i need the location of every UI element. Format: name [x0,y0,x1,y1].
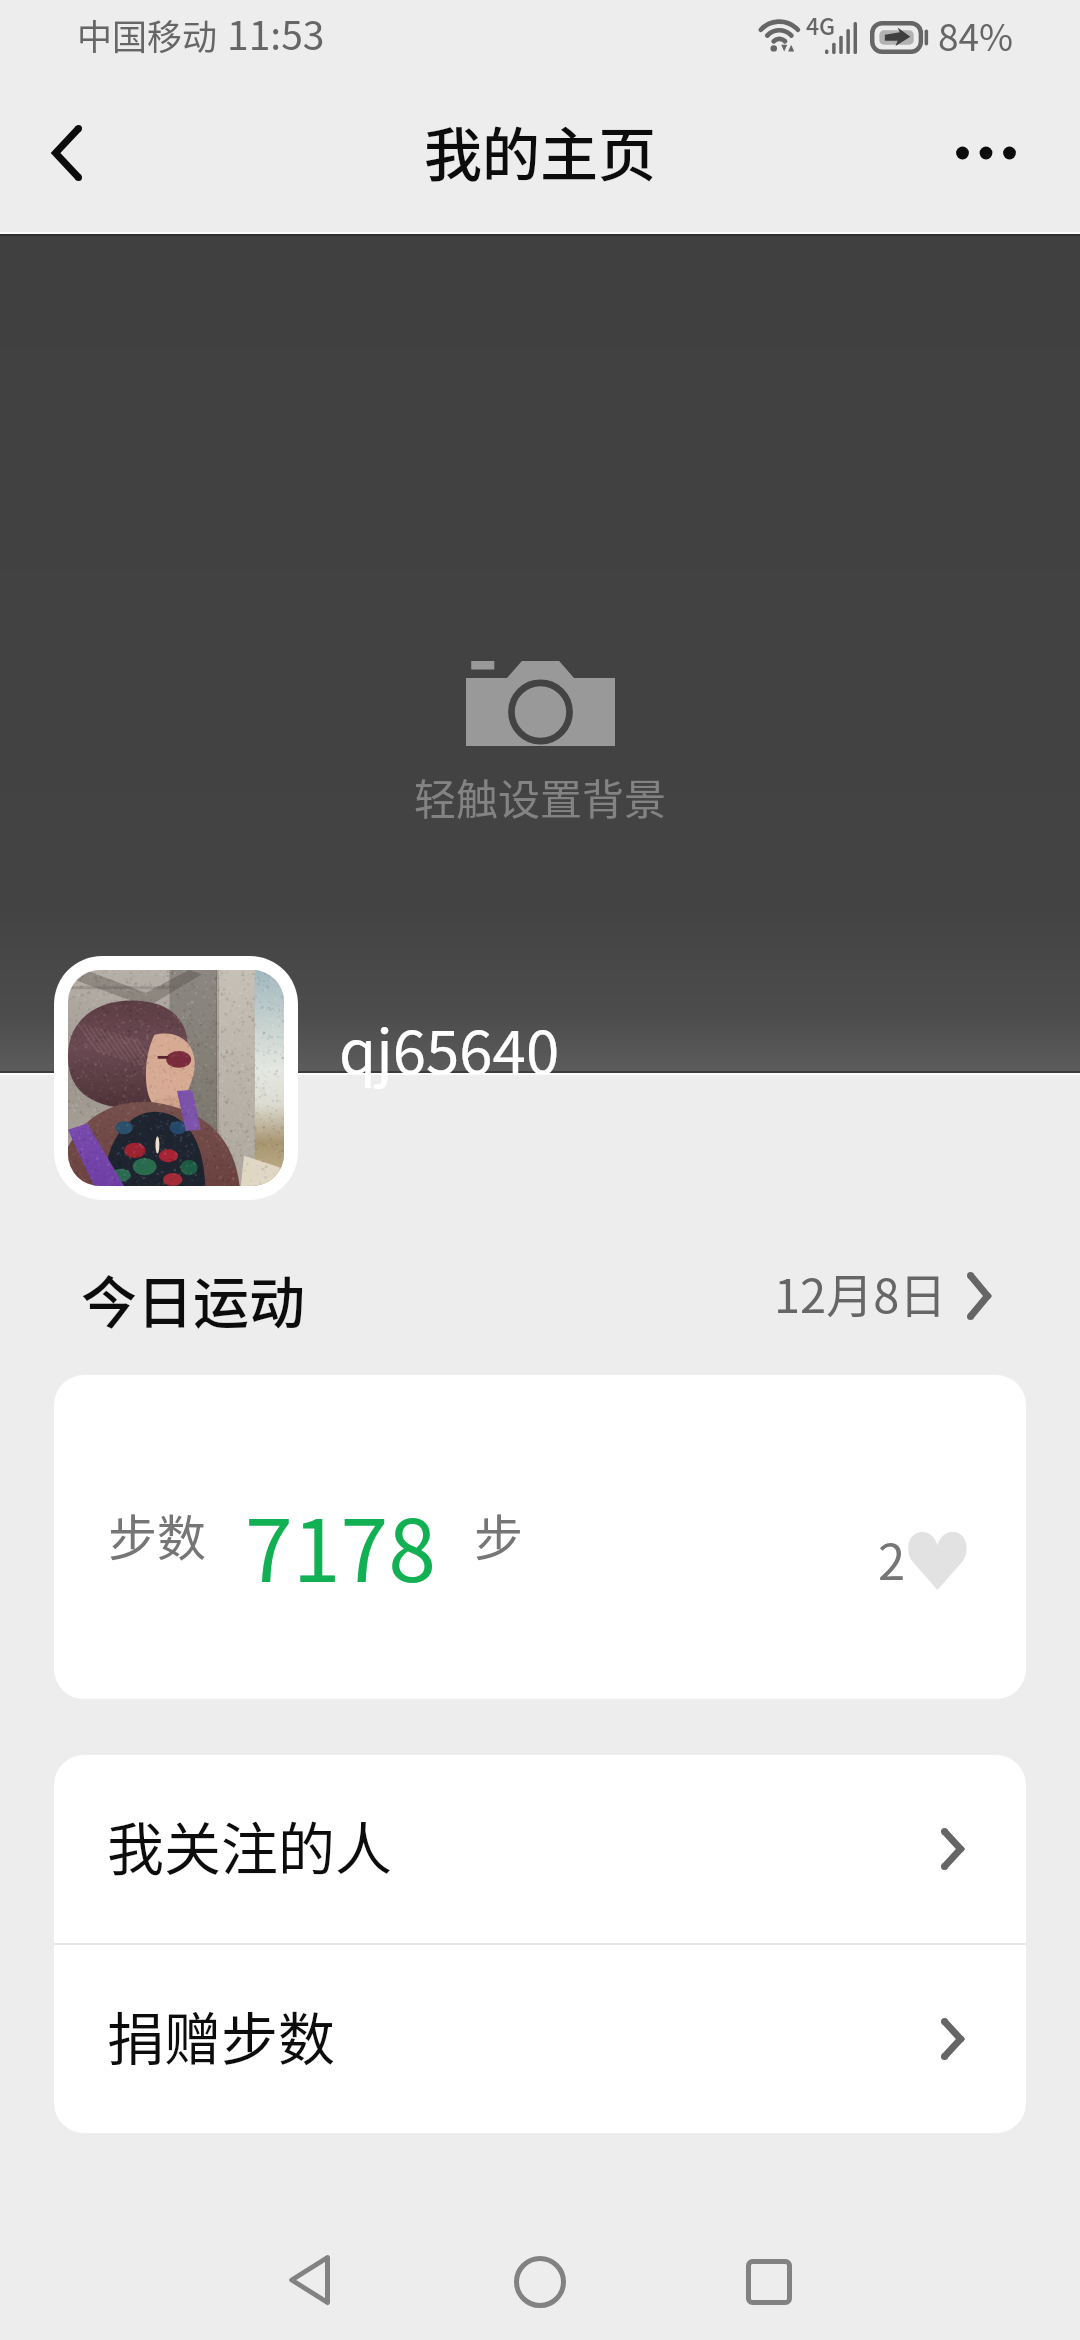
button[interactable]: Back [219,2150,399,2340]
staticText: 我关注的人 [107,1804,392,1887]
staticText: 步数 [108,1499,207,1570]
button[interactable]: 捐赠步数 [54,1945,1026,2133]
button[interactable]: 步数 [54,1375,1026,1699]
button[interactable]: Recent apps [679,2150,859,2340]
staticText: 2 [878,1523,906,1594]
button[interactable]: 12月8日 [760,1258,1028,1326]
button[interactable]: Back [0,72,131,234]
button[interactable]: 我关注的人 [54,1755,1026,1943]
button[interactable]: Profile photo [54,956,298,1200]
button[interactable]: More options [938,72,1080,234]
staticText: 4G [806,8,836,41]
staticText: 步 [474,1499,524,1570]
staticText: qj65640 [339,1004,560,1091]
staticText: 中国移动 [77,9,218,60]
staticText: 今日运动 [81,1258,305,1339]
staticText: 11:53 [227,5,325,61]
staticText: 84% [938,8,1014,62]
staticText: 捐赠步数 [107,1994,335,2077]
staticText: 我的主页 [424,109,657,193]
staticText: 轻触设置背景 [414,766,667,827]
button[interactable]: Set background photo [0,234,1080,1073]
staticText: 12月8日 [774,1258,947,1326]
button[interactable]: Home [450,2150,630,2340]
staticText: 7178 [245,1482,436,1607]
